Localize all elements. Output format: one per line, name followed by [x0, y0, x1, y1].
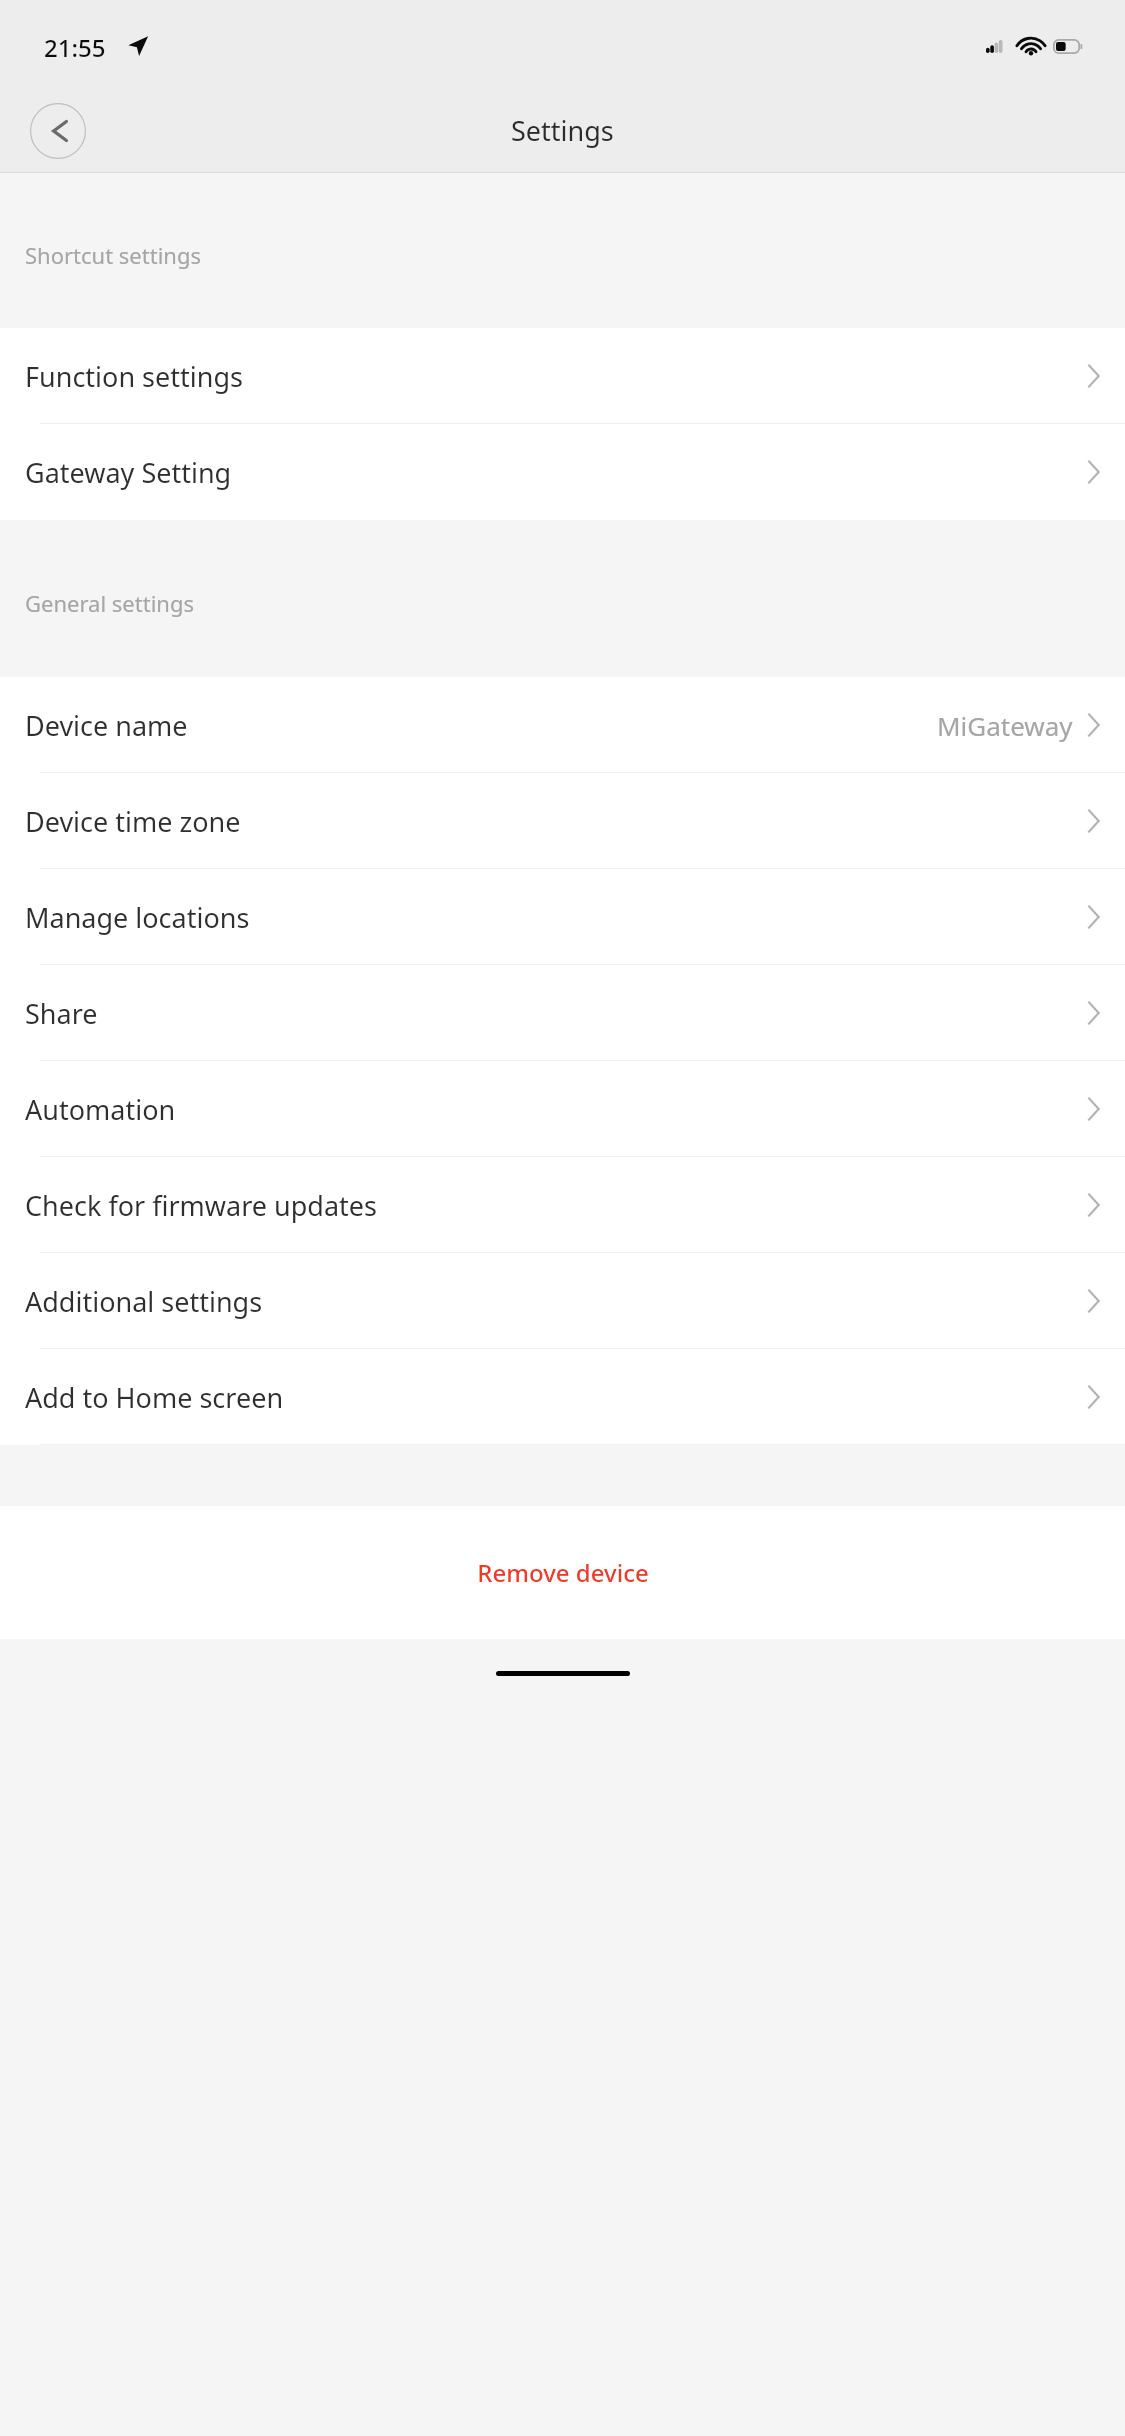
staticText: Automation — [25, 1091, 176, 1128]
staticText: Function settings — [25, 358, 243, 395]
button[interactable]: Check for firmware updates — [0, 1157, 1125, 1253]
staticText: Share — [25, 995, 98, 1032]
staticText: Shortcut settings — [25, 240, 202, 270]
button[interactable]: Function settings — [0, 328, 1125, 424]
staticText: Remove device — [477, 1556, 649, 1589]
staticText: Manage locations — [25, 899, 250, 936]
button[interactable]: Remove device — [0, 1506, 1125, 1639]
staticText: Device name — [25, 707, 188, 744]
button[interactable]: Gateway Setting — [0, 424, 1125, 520]
button[interactable]: Automation — [0, 1061, 1125, 1157]
staticText: General settings — [25, 588, 194, 618]
button[interactable]: Device name — [0, 677, 1125, 773]
staticText: Add to Home screen — [25, 1379, 284, 1416]
staticText: Check for firmware updates — [25, 1187, 377, 1224]
button[interactable]: Back — [30, 103, 86, 159]
staticText: Settings — [511, 112, 614, 149]
button[interactable]: Add to Home screen — [0, 1349, 1125, 1445]
button[interactable]: Share — [0, 965, 1125, 1061]
staticText: MiGateway — [937, 708, 1073, 743]
button[interactable]: Device time zone — [0, 773, 1125, 869]
staticText: 21:55 — [44, 31, 106, 64]
staticText: Device time zone — [25, 803, 241, 840]
staticText: Additional settings — [25, 1283, 263, 1320]
button[interactable]: Manage locations — [0, 869, 1125, 965]
staticText: Gateway Setting — [25, 454, 232, 491]
button[interactable]: Additional settings — [0, 1253, 1125, 1349]
